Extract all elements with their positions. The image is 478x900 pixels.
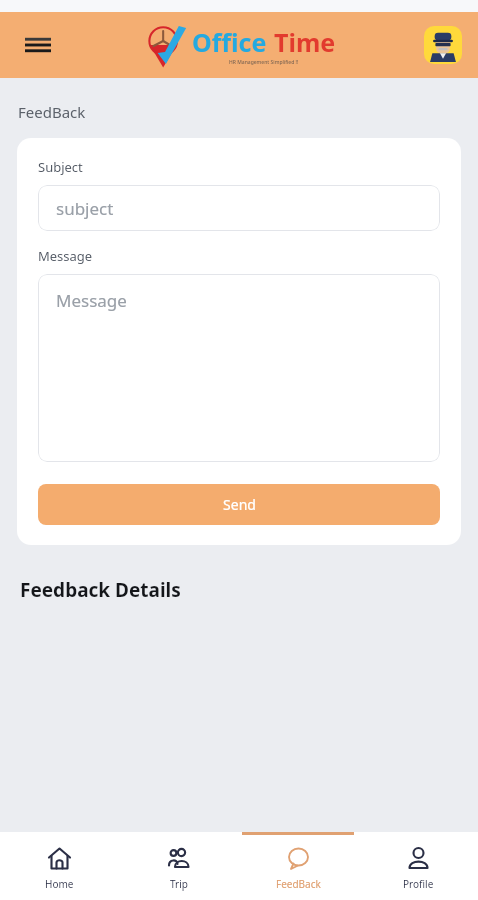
button[interactable]: Menu [16, 23, 60, 67]
staticText: subject [56, 197, 114, 220]
button[interactable]: Profile [358, 832, 478, 900]
button[interactable]: Home [0, 832, 119, 900]
staticText: Profile [403, 877, 434, 891]
staticText: Feedback Details [20, 577, 181, 603]
staticText: FeedBack [18, 102, 86, 122]
button[interactable]: subject [38, 185, 440, 231]
staticText: Subject [38, 158, 83, 176]
button[interactable]: Send [38, 484, 440, 525]
button[interactable]: Profile avatar [424, 26, 462, 64]
button[interactable]: Message [38, 274, 440, 462]
staticText: Message [38, 247, 93, 265]
staticText: Time [274, 25, 336, 59]
staticText: Office [192, 25, 267, 59]
staticText: Message [56, 289, 127, 312]
button[interactable]: FeedBack [238, 832, 358, 900]
staticText: HR Management Simplified !! [229, 59, 299, 66]
button[interactable]: Trip [119, 832, 238, 900]
staticText: Home [45, 877, 74, 891]
staticText: FeedBack [276, 877, 321, 891]
staticText: Send [223, 495, 256, 514]
staticText: Trip [170, 877, 188, 891]
